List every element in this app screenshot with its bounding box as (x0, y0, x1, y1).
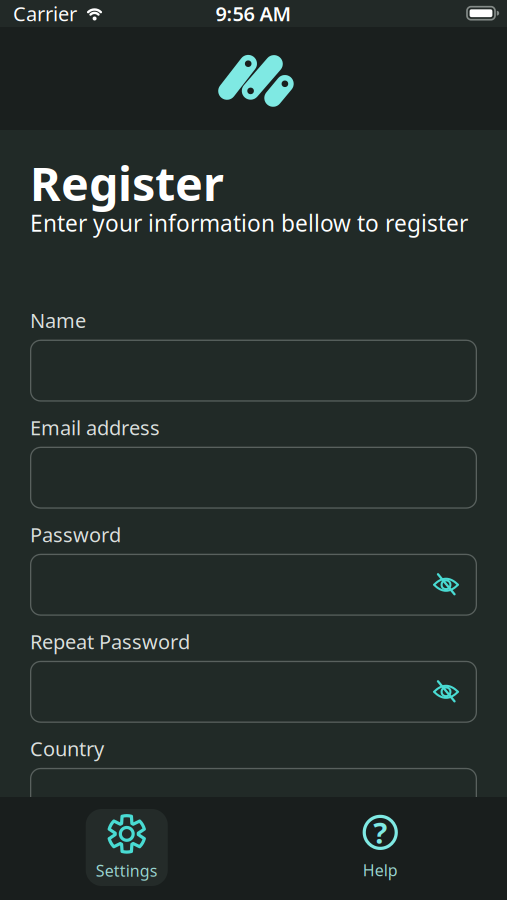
staticText: Enter your information bellow to registe… (30, 208, 468, 238)
staticText: 9:56 AM (215, 0, 291, 27)
staticText: Name (30, 307, 86, 334)
staticText: ? (373, 813, 387, 852)
button[interactable]: Settings (86, 809, 168, 886)
staticText: Settings (96, 860, 158, 881)
button[interactable]: Show password (433, 574, 477, 596)
staticText: Help (363, 859, 398, 881)
staticText: Carrier (13, 0, 77, 27)
staticText: Country (30, 735, 104, 762)
staticText: Password (30, 521, 121, 548)
staticText: Repeat Password (30, 628, 190, 655)
staticText: Email address (30, 414, 160, 441)
button[interactable]: ? (362, 814, 398, 881)
button[interactable]: Show password (433, 681, 477, 703)
staticText: Register (30, 152, 224, 214)
